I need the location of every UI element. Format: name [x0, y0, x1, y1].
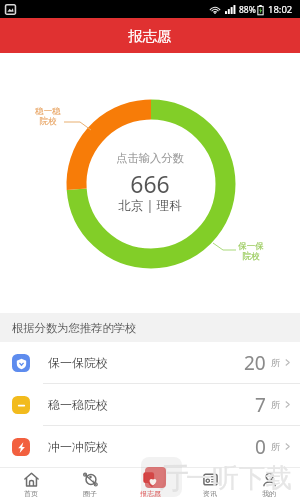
- staticText: 冲一冲院校: [48, 439, 108, 454]
- button[interactable]: 资讯: [181, 469, 239, 498]
- button[interactable]: 保一保院校: [0, 342, 300, 383]
- staticText: 报志愿: [140, 489, 161, 498]
- button[interactable]: 首页: [2, 469, 60, 498]
- staticText: 点击输入分数: [0, 151, 300, 165]
- button[interactable]: 圈子: [61, 469, 119, 498]
- staticText: 一听下载: [186, 461, 292, 494]
- staticText: 稳一稳院校: [48, 397, 108, 412]
- staticText: 圈子: [83, 489, 97, 498]
- staticText: 首页: [24, 489, 38, 498]
- button[interactable]: 冲一冲院校: [0, 426, 300, 467]
- staticText: 所: [271, 357, 280, 368]
- button[interactable]: 输入分数: [51, 93, 251, 273]
- staticText: 资讯: [203, 489, 217, 498]
- staticText: 保一保院校: [48, 355, 108, 370]
- staticText: 根据分数为您推荐的学校: [12, 321, 137, 335]
- staticText: 0: [255, 434, 266, 460]
- staticText: 7: [255, 392, 266, 418]
- staticText: 20: [244, 350, 266, 376]
- staticText: 北京 | 理科: [0, 197, 300, 214]
- staticText: 所: [271, 441, 280, 452]
- staticText: 我的: [262, 489, 276, 498]
- button[interactable]: 稳一稳院校: [0, 384, 300, 425]
- button[interactable]: 我的: [240, 469, 298, 498]
- button[interactable]: 报志愿: [121, 469, 179, 498]
- staticText: 88%: [239, 4, 256, 16]
- staticText: 所: [271, 399, 280, 410]
- staticText: 保一保 院校: [238, 241, 264, 262]
- staticText: 报志愿: [128, 27, 172, 45]
- staticText: 厅: [159, 459, 189, 497]
- staticText: 18:02: [268, 3, 293, 16]
- staticText: 稳一稳 院校: [35, 106, 61, 127]
- staticText: 666: [0, 168, 300, 199]
